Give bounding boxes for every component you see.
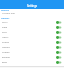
button[interactable]: Backup — [0, 55, 64, 60]
staticText: Data — [2, 26, 8, 29]
button[interactable]: Options — [1, 17, 64, 20]
button[interactable]: Toggle setting — [56, 45, 62, 50]
button[interactable]: Toggle setting — [56, 50, 62, 55]
button[interactable]: Toggle setting — [56, 30, 62, 35]
button[interactable]: Data — [0, 25, 64, 30]
staticText: Sync — [2, 31, 7, 34]
staticText: Settings — [27, 4, 38, 8]
staticText: Vibrate — [2, 46, 10, 49]
button[interactable]: Toggle setting — [56, 35, 62, 40]
staticText: Alerts — [2, 36, 9, 39]
button[interactable]: Sync — [0, 30, 64, 35]
staticText: Options — [1, 17, 10, 20]
button[interactable]: Account info — [2, 12, 64, 15]
staticText: Backup — [2, 56, 10, 59]
button[interactable]: Beta — [0, 60, 64, 65]
button[interactable]: Sound — [0, 40, 64, 45]
staticText: General — [1, 9, 10, 12]
staticText: Theme — [2, 51, 10, 54]
button[interactable]: Alerts — [0, 35, 64, 40]
button[interactable]: General — [1, 9, 64, 12]
button[interactable]: Wi-Fi — [0, 20, 64, 25]
button[interactable]: Toggle setting — [56, 40, 62, 45]
button[interactable]: Toggle setting — [56, 25, 62, 30]
button[interactable]: Toggle setting — [56, 55, 62, 60]
button[interactable]: Toggle setting — [56, 20, 62, 25]
button[interactable]: Theme — [0, 50, 64, 55]
staticText: Beta — [2, 61, 7, 64]
button[interactable]: Vibrate — [0, 45, 64, 50]
staticText: Sound — [2, 41, 9, 44]
staticText: Wi-Fi — [2, 21, 8, 24]
staticText: Account info — [2, 12, 15, 15]
button[interactable]: Toggle setting — [56, 60, 62, 65]
